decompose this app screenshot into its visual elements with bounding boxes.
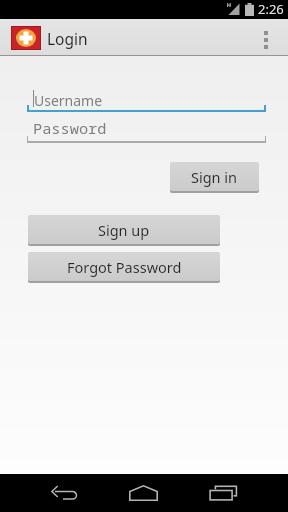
button[interactable]: Sign up [28, 215, 220, 244]
button[interactable]: Forgot Password [28, 252, 220, 281]
button[interactable]: Password [27, 120, 266, 146]
button[interactable] [264, 31, 268, 49]
button[interactable]: Username [27, 90, 266, 116]
button[interactable] [44, 474, 84, 512]
staticText: Forgot Password [67, 257, 182, 277]
staticText: Password [33, 118, 107, 139]
staticText: Username [34, 91, 103, 110]
staticText: Login [47, 28, 88, 49]
button[interactable] [203, 474, 243, 512]
staticText: 2:26 [258, 0, 284, 18]
staticText: Sign in [191, 167, 238, 187]
staticText: Sign up [98, 220, 150, 240]
button[interactable]: Sign in [170, 162, 259, 191]
button[interactable] [123, 474, 163, 512]
